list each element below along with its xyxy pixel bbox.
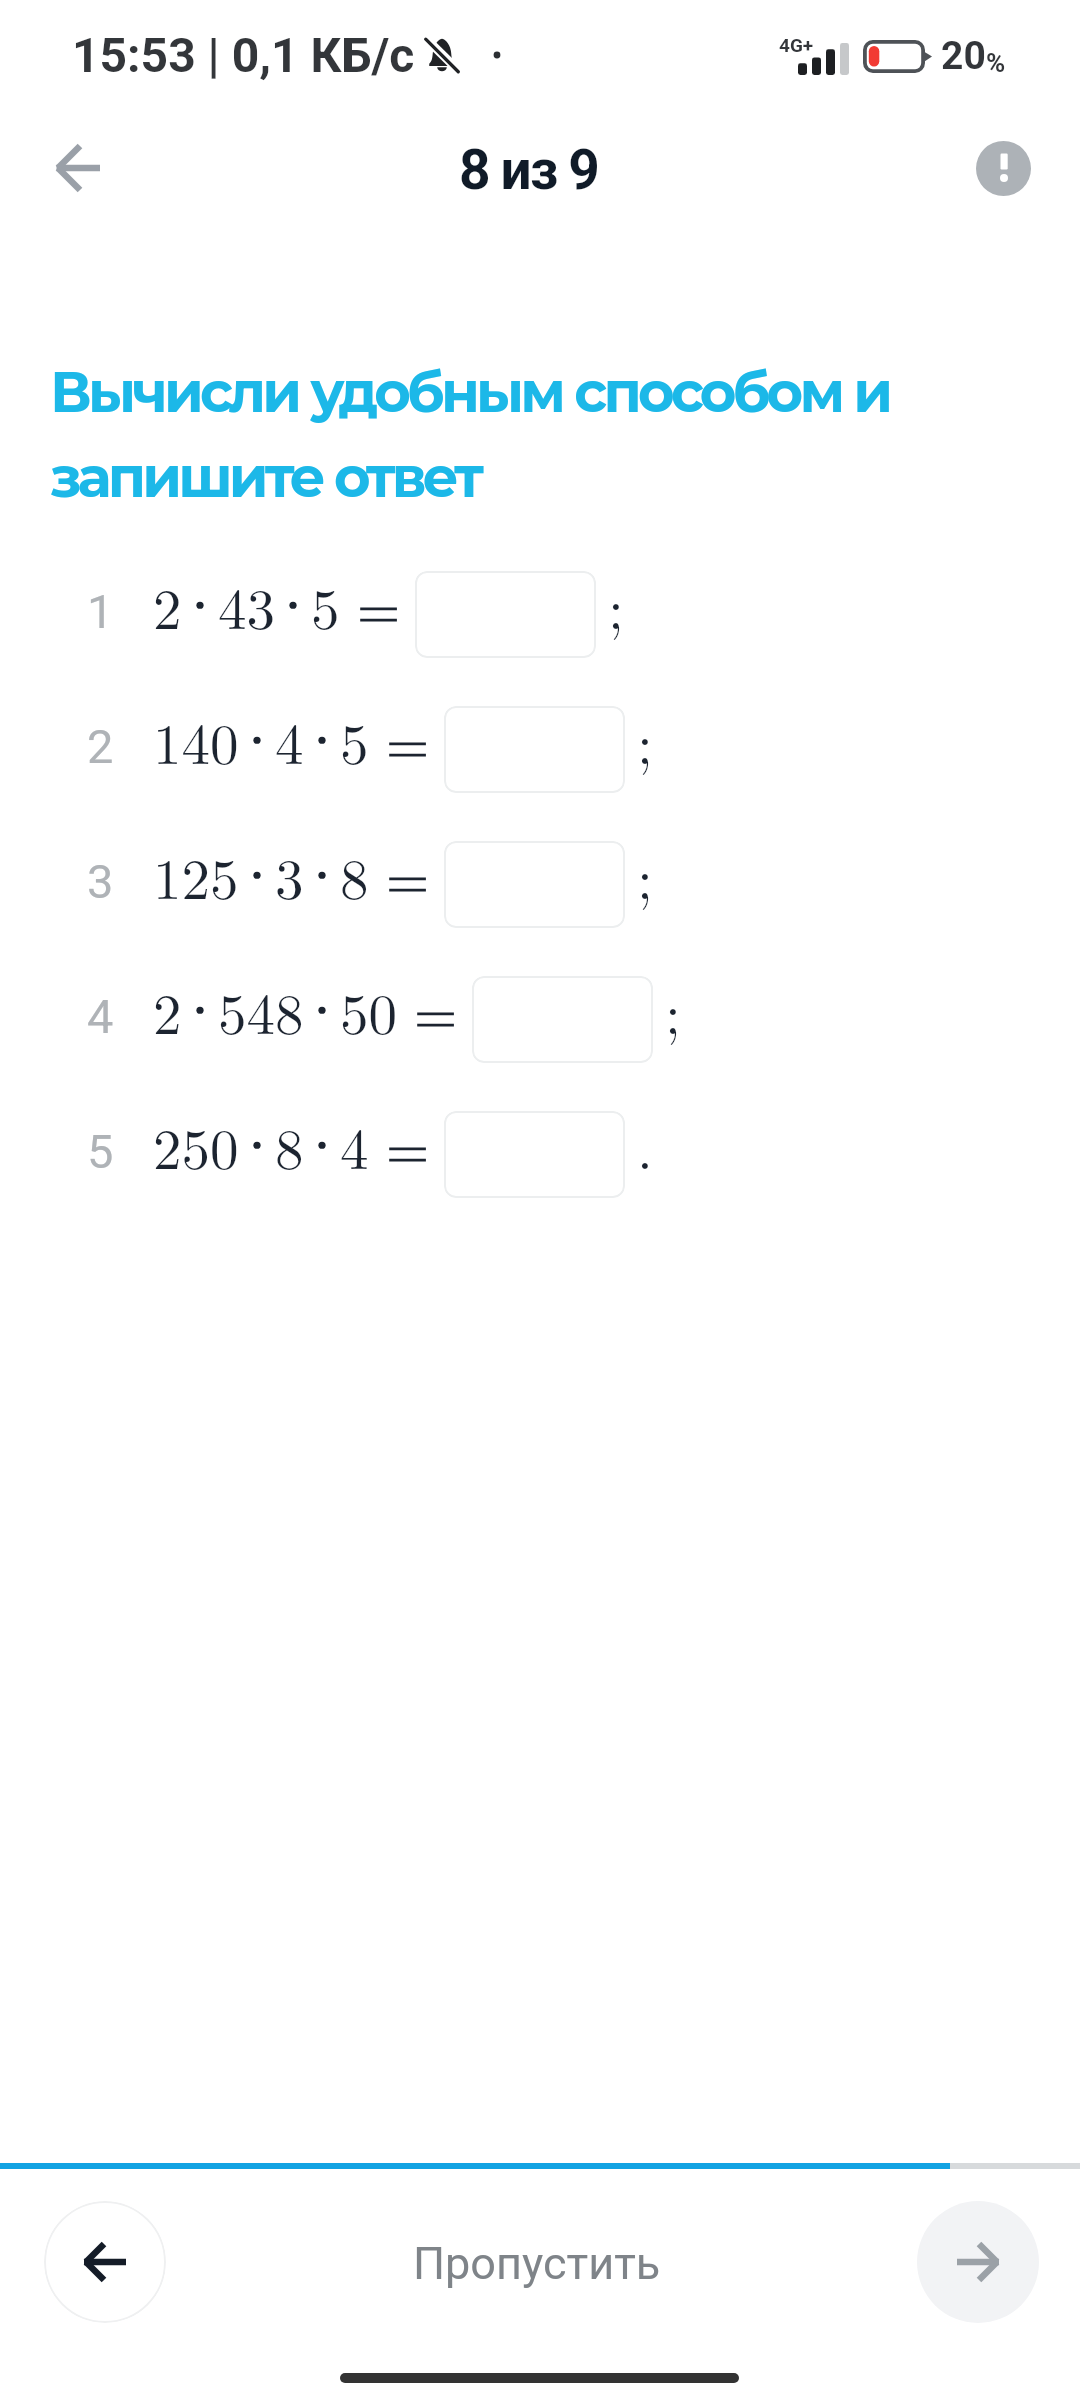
staticText: 8 из 9	[459, 138, 599, 202]
staticText: 50	[340, 970, 397, 1051]
staticText: 4	[87, 989, 114, 1044]
staticText: 15:53 | 0,1 КБ/с	[72, 27, 415, 83]
staticText: 2	[153, 565, 182, 646]
staticText: ;	[608, 565, 624, 646]
button[interactable]: Назад	[44, 2201, 166, 2323]
staticText: 8	[275, 1105, 304, 1186]
staticText: Вычисли удобным способом и запишите отве…	[50, 358, 890, 512]
staticText: 1	[87, 584, 114, 639]
staticText: 2	[87, 719, 114, 774]
staticText: ;	[637, 835, 653, 916]
button[interactable]	[444, 1111, 625, 1198]
staticText: 2	[153, 970, 182, 1051]
staticText: ;	[665, 970, 681, 1051]
staticText: 8	[340, 835, 369, 916]
staticText: 43	[218, 565, 275, 646]
staticText: 3	[87, 854, 114, 909]
staticText: 5	[340, 700, 369, 781]
button[interactable]	[444, 841, 625, 928]
button[interactable]	[415, 571, 596, 658]
button[interactable]: Информация	[976, 141, 1031, 196]
staticText: Пропустить	[413, 2237, 661, 2290]
staticText: 20	[941, 33, 986, 79]
staticText: .	[637, 1105, 653, 1186]
staticText: 3	[275, 835, 304, 916]
staticText: 250	[153, 1105, 239, 1186]
button[interactable]: Назад	[29, 120, 125, 216]
staticText: 5	[87, 1124, 114, 1179]
staticText: 125	[153, 835, 239, 916]
button[interactable]	[472, 976, 653, 1063]
staticText: 140	[153, 700, 239, 781]
staticText: %	[986, 48, 1006, 78]
staticText: 4G+	[779, 34, 814, 56]
button[interactable]: Далее	[917, 2201, 1039, 2323]
staticText: 4	[340, 1105, 369, 1186]
button[interactable]	[444, 706, 625, 793]
staticText: ;	[637, 700, 653, 781]
button[interactable]: Пропустить	[383, 2223, 691, 2304]
staticText: 4	[275, 700, 304, 781]
staticText: 5	[311, 565, 340, 646]
staticText: 548	[218, 970, 304, 1051]
